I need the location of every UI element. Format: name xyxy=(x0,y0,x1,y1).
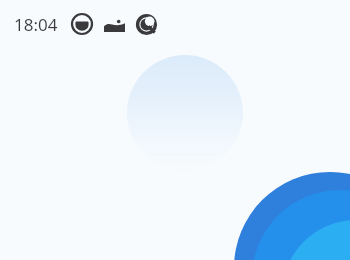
button[interactable]: Assistant xyxy=(134,12,158,36)
button[interactable]: Do not disturb xyxy=(70,12,94,36)
staticText: 18:04 xyxy=(14,13,58,36)
button[interactable]: Wallpaper xyxy=(102,12,126,36)
